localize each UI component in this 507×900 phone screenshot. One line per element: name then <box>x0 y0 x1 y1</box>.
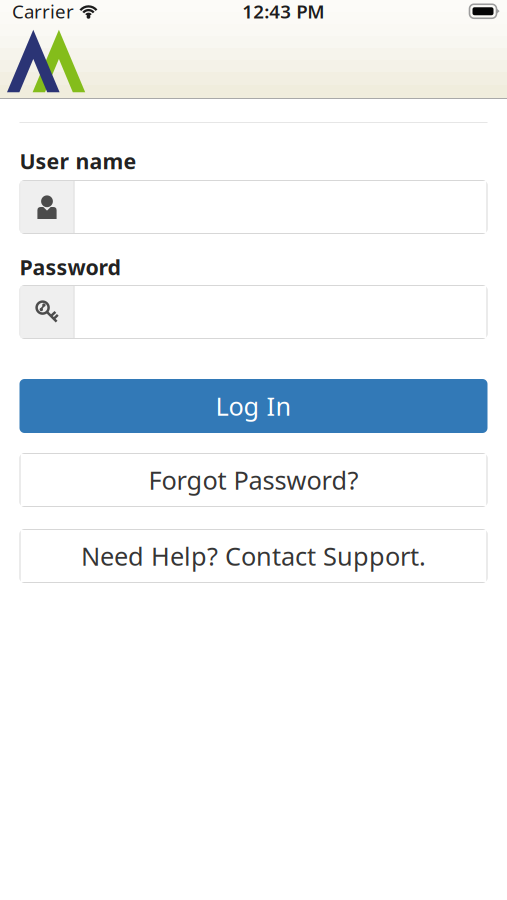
staticText: Forgot Password? <box>148 463 358 497</box>
staticText: 12:43 PM <box>242 0 324 24</box>
staticText: Carrier <box>12 0 74 24</box>
staticText: Password <box>19 253 120 281</box>
button[interactable]: Log In <box>19 379 487 433</box>
button[interactable]: User name <box>19 180 487 234</box>
staticText: User name <box>19 147 136 175</box>
staticText: Need Help? Contact Support. <box>81 539 426 573</box>
staticText: Log In <box>215 389 291 423</box>
button[interactable]: Need Help? Contact Support. <box>19 529 487 583</box>
button[interactable]: Password <box>19 285 487 339</box>
button[interactable]: Forgot Password? <box>19 453 487 507</box>
